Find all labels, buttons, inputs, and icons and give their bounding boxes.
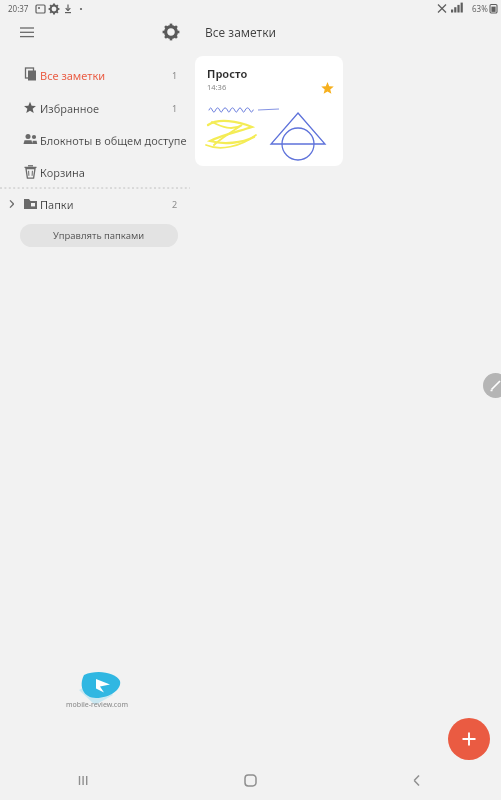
staticText: Папки [40,197,74,212]
button[interactable]: Create note [448,718,490,760]
button[interactable]: Settings [157,18,185,46]
staticText: 1 [172,69,178,81]
staticText: 1 [172,102,178,114]
staticText: 14:36 [207,82,227,92]
button[interactable]: Управлять папками [20,224,178,247]
button[interactable]: Recents [0,760,167,800]
button[interactable]: Pen tool [483,373,501,398]
staticText: 63% [472,3,488,14]
button[interactable]: Избранное [0,93,190,123]
staticText: Корзина [40,165,85,180]
staticText: Все заметки [205,24,276,40]
button[interactable]: Back [334,760,501,800]
staticText: Управлять папками [53,229,145,242]
staticText: 20:37 [8,3,29,14]
button[interactable]: Menu [14,18,42,46]
staticText: Все заметки [40,68,106,83]
staticText: Блокноты в общем доступе [40,133,187,148]
staticText: 2 [172,198,178,210]
staticText: Избранное [40,101,100,116]
button[interactable]: Корзина [0,157,190,187]
button[interactable]: Блокноты в общем доступе [0,125,190,155]
staticText: mobile-review.com [53,700,141,710]
button[interactable]: Home [167,760,334,800]
button[interactable]: Папки [0,189,190,219]
button[interactable]: Все заметки [0,60,190,90]
button[interactable]: Просто [195,56,343,166]
staticText: Просто [207,66,248,81]
